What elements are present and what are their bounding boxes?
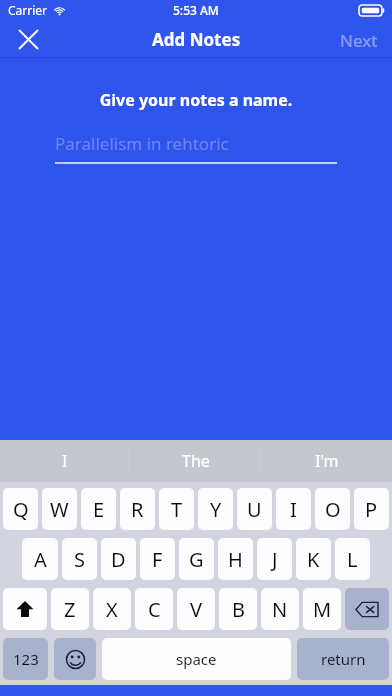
button[interactable]: D [101,538,136,580]
staticText: 5:53 AM [173,2,219,18]
button[interactable]: I [276,488,311,530]
button[interactable]: Q [3,488,38,530]
staticText: J [272,546,278,573]
button[interactable]: B [219,588,257,630]
staticText: X [106,596,118,623]
button[interactable]: P [354,488,389,530]
button[interactable]: Shift [3,588,47,630]
staticText: Give your notes a name. [0,89,392,111]
staticText: I'm [315,450,339,472]
staticText: Add Notes [152,28,241,51]
staticText: D [111,546,126,573]
staticText: I [62,450,68,472]
button[interactable]: J [257,538,292,580]
staticText: P [365,496,378,523]
staticText: N [272,596,288,623]
button[interactable]: N [261,588,299,630]
staticText: C [148,596,161,623]
button[interactable]: space [102,638,291,680]
button[interactable]: return [297,638,389,680]
button[interactable]: Z [51,588,89,630]
staticText: W [50,496,69,523]
staticText: H [228,546,243,573]
button[interactable]: T [159,488,194,530]
staticText: Carrier [8,2,48,18]
staticText: space [176,649,217,669]
staticText: Q [13,496,29,523]
button[interactable]: Close [7,20,49,58]
button[interactable]: R [120,488,155,530]
staticText: The [182,450,210,472]
staticText: K [307,546,320,573]
staticText: F [152,546,163,573]
staticText: M [313,596,332,623]
staticText: E [93,496,105,523]
button[interactable]: U [237,488,272,530]
staticText: S [74,546,85,573]
button[interactable]: V [177,588,215,630]
button[interactable]: K [296,538,331,580]
staticText: Z [64,596,76,623]
staticText: Next [340,29,378,49]
staticText: I [290,496,297,523]
button[interactable]: I'm [261,440,392,482]
button[interactable]: 123 [3,638,48,680]
button[interactable]: F [140,538,175,580]
staticText: V [190,596,202,623]
staticText: return [321,649,366,669]
staticText: G [189,546,204,573]
button[interactable]: Parallelism in rehtoric [55,132,337,164]
button[interactable]: S [62,538,97,580]
button[interactable]: H [218,538,253,580]
staticText: U [247,496,262,523]
staticText: Y [210,496,222,523]
staticText: Parallelism in rehtoric [55,132,229,155]
button[interactable]: Backspace [345,588,389,630]
button[interactable]: The [130,440,261,482]
staticText: L [347,546,358,573]
button[interactable]: C [135,588,173,630]
staticText: T [171,496,183,523]
staticText: 123 [13,649,39,669]
button[interactable]: L [335,538,370,580]
button[interactable]: I [0,440,130,482]
staticText: R [131,496,144,523]
staticText: O [325,496,341,523]
button[interactable]: W [42,488,77,530]
button[interactable]: O [315,488,350,530]
button[interactable]: G [179,538,214,580]
button[interactable]: Y [198,488,233,530]
staticText: A [34,546,47,573]
button[interactable]: E [81,488,116,530]
button[interactable]: X [93,588,131,630]
button[interactable]: A [22,538,58,580]
button[interactable]: Emoji [54,638,96,680]
button[interactable]: Next [326,20,392,58]
button[interactable]: M [303,588,341,630]
staticText: B [232,596,245,623]
